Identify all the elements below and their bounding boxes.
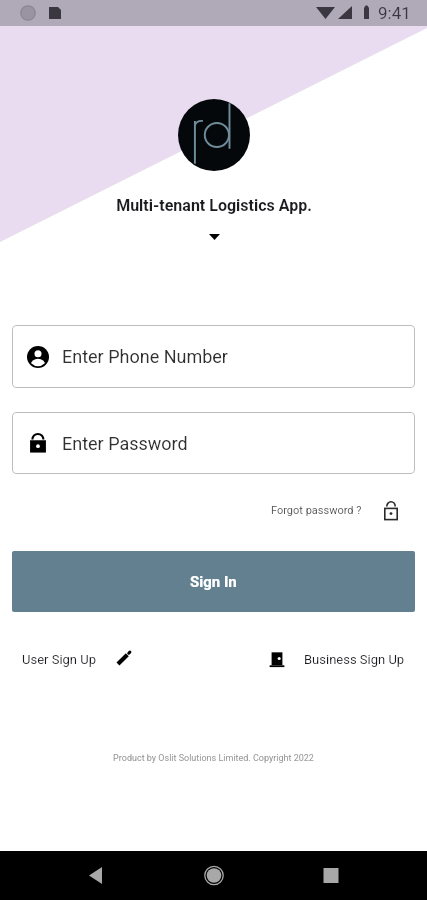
staticText: Sign In	[190, 573, 237, 591]
staticText: Business Sign Up	[304, 652, 405, 667]
button[interactable]: Business Sign Up	[268, 646, 405, 672]
button[interactable]: Select tenant	[197, 228, 231, 246]
staticText: Enter Phone Number	[62, 346, 228, 367]
button[interactable]: Enter Phone Number	[12, 325, 415, 388]
staticText: User Sign Up	[22, 652, 96, 667]
staticText: Multi-tenant Logistics App.	[116, 196, 312, 215]
staticText: Forgot password ?	[271, 504, 362, 517]
staticText: Enter Password	[62, 433, 188, 454]
staticText: 9:41	[378, 3, 411, 23]
button[interactable]: Enter Password	[12, 412, 415, 474]
staticText: Product by Oslit Solutions Limited. Copy…	[113, 753, 314, 764]
button[interactable]: Sign In	[12, 551, 415, 612]
button[interactable]: Forgot password ?	[271, 497, 398, 523]
button[interactable]: User Sign Up	[22, 646, 132, 672]
